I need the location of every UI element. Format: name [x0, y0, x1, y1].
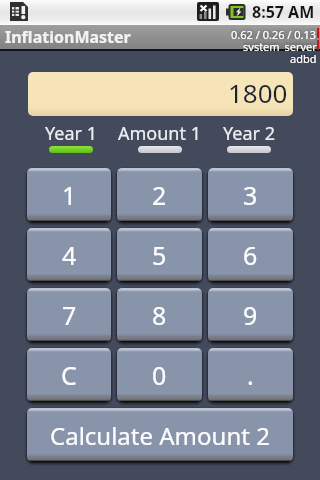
button[interactable]: 3 [208, 168, 293, 222]
button[interactable]: 1 [27, 168, 111, 222]
staticText: adbd [290, 51, 317, 63]
button[interactable]: . [208, 348, 293, 402]
staticText: 4 [62, 238, 77, 272]
staticText: 2 [152, 178, 167, 212]
button[interactable]: Year 1 [27, 121, 115, 153]
staticText: 3 [243, 178, 258, 212]
button[interactable]: Year 2 [204, 121, 293, 153]
staticText: Year 1 [45, 121, 97, 146]
staticText: 1 [62, 178, 77, 212]
staticText: Calculate Amount 2 [50, 419, 270, 452]
button[interactable]: 9 [208, 288, 293, 342]
button[interactable]: Amount 1 [115, 121, 204, 153]
button[interactable]: 8 [117, 288, 202, 342]
staticText: InflationMaster [5, 26, 131, 48]
staticText: 8:57 AM [252, 1, 315, 23]
staticText: 9 [243, 298, 258, 332]
button[interactable]: 5 [117, 228, 202, 282]
button[interactable]: 0 [117, 348, 202, 402]
staticText: C [61, 358, 77, 392]
staticText: 7 [62, 298, 77, 332]
staticText: 0 [152, 358, 167, 392]
button[interactable]: 4 [27, 228, 111, 282]
staticText: 6 [243, 238, 258, 272]
staticText: 8 [152, 298, 167, 332]
staticText: 0.62 / 0.26 / 0.13 [231, 27, 317, 39]
staticText: system_server [243, 39, 317, 51]
button[interactable]: C [27, 348, 111, 402]
button[interactable]: 2 [117, 168, 202, 222]
staticText: 1800 [228, 75, 288, 110]
staticText: . [247, 358, 254, 392]
button[interactable]: 6 [208, 228, 293, 282]
staticText: Amount 1 [118, 121, 201, 146]
staticText: Year 2 [223, 121, 275, 146]
button[interactable]: 7 [27, 288, 111, 342]
button[interactable]: 1800 [28, 72, 293, 116]
button[interactable]: Calculate Amount 2 [27, 408, 293, 462]
staticText: 5 [152, 238, 167, 272]
